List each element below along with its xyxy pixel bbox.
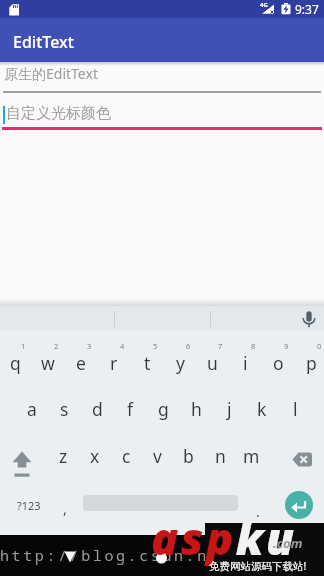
staticText: h <box>191 397 202 421</box>
button[interactable]: o <box>262 346 294 380</box>
staticText: 8 <box>251 341 256 351</box>
button[interactable]: a <box>16 392 48 426</box>
staticText: 0 <box>317 341 322 351</box>
staticText: w <box>41 351 55 375</box>
button[interactable]: b <box>173 439 204 473</box>
button[interactable]: t <box>131 346 163 380</box>
button[interactable]: r <box>98 346 130 380</box>
staticText: q <box>10 351 21 375</box>
button[interactable]: k <box>246 392 278 426</box>
button[interactable]: , <box>53 493 77 523</box>
button[interactable] <box>288 441 322 475</box>
staticText: .com <box>273 534 303 552</box>
staticText: b <box>183 444 194 468</box>
staticText: 4G <box>260 1 268 9</box>
staticText: EditText <box>13 31 74 53</box>
button[interactable]: u <box>196 346 228 380</box>
staticText: p <box>306 351 317 375</box>
button[interactable]: l <box>279 392 311 426</box>
button[interactable] <box>285 491 313 519</box>
staticText: o <box>273 351 284 375</box>
button[interactable]: y <box>164 346 196 380</box>
staticText: http://blog.csdn.net <box>0 545 233 565</box>
staticText: u <box>207 351 218 375</box>
staticText: j <box>227 397 232 421</box>
staticText: z <box>59 444 68 468</box>
button[interactable]: . <box>246 496 270 526</box>
staticText: 原生的EditText <box>4 64 98 83</box>
staticText: s <box>60 397 69 421</box>
staticText: 9:37 <box>295 1 319 17</box>
button[interactable]: e <box>65 346 97 380</box>
button[interactable] <box>6 441 40 479</box>
button[interactable]: z <box>48 439 79 473</box>
staticText: l <box>293 397 298 421</box>
staticText: m <box>243 444 260 468</box>
staticText: 免费网站源码下载站! <box>209 559 307 573</box>
button[interactable]: p <box>295 346 324 380</box>
staticText: f <box>127 397 134 421</box>
button[interactable]: ?123 <box>7 490 51 520</box>
button[interactable]: g <box>147 392 179 426</box>
staticText: g <box>158 397 169 421</box>
staticText: d <box>92 397 103 421</box>
staticText: 2 <box>54 341 59 351</box>
button[interactable]: w <box>32 346 64 380</box>
button[interactable]: d <box>81 392 113 426</box>
button[interactable]: i <box>229 346 261 380</box>
staticText: 1 <box>21 341 26 351</box>
button[interactable] <box>0 63 324 93</box>
button[interactable] <box>56 543 84 571</box>
staticText: n <box>215 444 226 468</box>
staticText: y <box>176 351 185 375</box>
staticText: k <box>257 397 267 421</box>
button[interactable]: v <box>142 439 173 473</box>
button[interactable]: c <box>111 439 142 473</box>
button[interactable] <box>0 98 324 130</box>
staticText: 7 <box>218 341 223 351</box>
button[interactable]: f <box>114 392 146 426</box>
staticText: , <box>63 499 67 518</box>
staticText: a <box>27 397 37 421</box>
staticText: 自定义光标颜色 <box>6 104 111 123</box>
staticText: 4 <box>120 341 125 351</box>
staticText: 5 <box>153 341 158 351</box>
staticText: aspku <box>151 507 297 568</box>
staticText: e <box>76 351 86 375</box>
button[interactable]: s <box>48 392 80 426</box>
staticText: . <box>256 502 260 521</box>
button[interactable] <box>148 544 176 572</box>
button[interactable]: j <box>213 392 245 426</box>
staticText: v <box>153 444 162 468</box>
staticText: 6 <box>186 341 191 351</box>
staticText: c <box>122 444 131 468</box>
button[interactable] <box>0 18 324 62</box>
staticText: 3 <box>87 341 92 351</box>
staticText: x <box>90 444 100 468</box>
staticText: 9 <box>284 341 289 351</box>
button[interactable]: m <box>236 439 267 473</box>
staticText: t <box>144 351 151 375</box>
staticText: ?123 <box>17 498 41 513</box>
button[interactable]: h <box>180 392 212 426</box>
button[interactable]: n <box>205 439 236 473</box>
button[interactable]: q <box>0 346 31 380</box>
button[interactable]: x <box>79 439 110 473</box>
staticText: i <box>243 351 248 375</box>
staticText: r <box>110 351 118 375</box>
